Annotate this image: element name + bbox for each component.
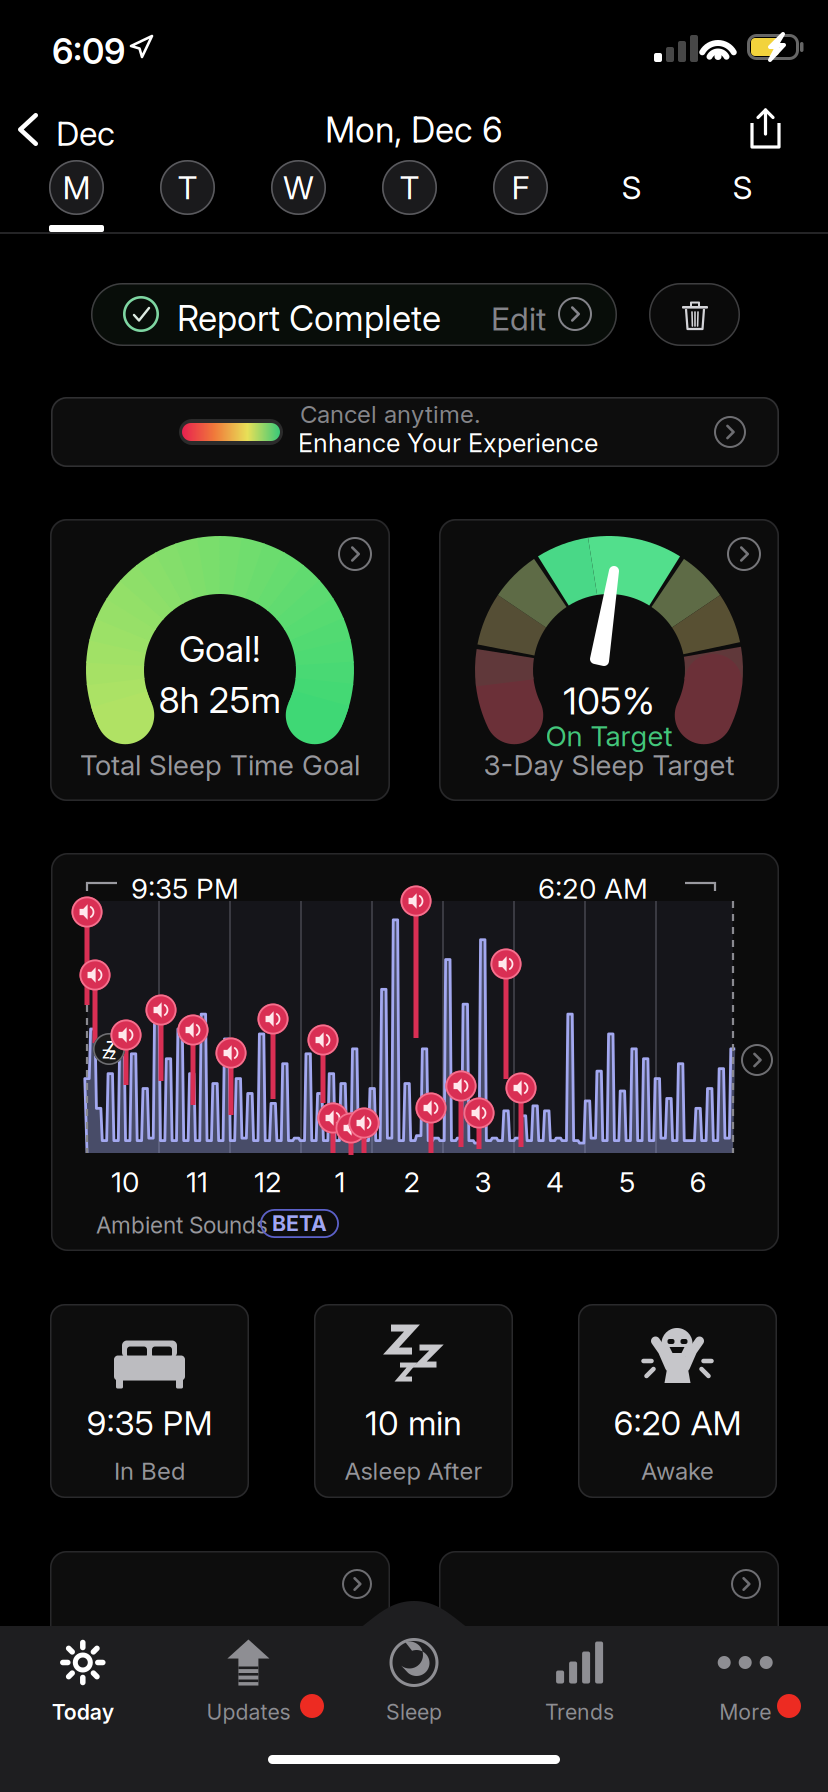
button[interactable]: Goal! — [50, 519, 390, 801]
staticText: Z — [106, 1038, 116, 1055]
staticText: T — [177, 169, 197, 206]
staticText: 6:20 AM — [538, 872, 648, 905]
staticText: On Target — [545, 719, 672, 752]
staticText: 9:35 PM — [131, 872, 239, 905]
staticText: T — [399, 169, 419, 206]
staticText: Cancel anytime. — [300, 400, 481, 428]
staticText: 6 — [689, 1165, 706, 1198]
staticText: Goal! — [179, 628, 261, 670]
button[interactable]: Cancel anytime. — [51, 397, 779, 467]
button[interactable]: S — [576, 160, 687, 232]
staticText: W — [283, 169, 314, 206]
staticText: 9:35 PM — [86, 1403, 212, 1443]
staticText: 8h 25m — [158, 679, 281, 721]
staticText: 1 — [334, 1165, 345, 1198]
staticText: Sleep — [386, 1699, 442, 1725]
button[interactable]: Trends — [497, 1626, 662, 1746]
staticText: 10 min — [365, 1403, 462, 1443]
staticText: Ambient Sounds — [96, 1212, 268, 1239]
button[interactable]: 9:35 PM — [50, 1304, 249, 1498]
staticText: More — [719, 1699, 771, 1725]
staticText: Dec — [56, 114, 115, 153]
staticText: 4 — [546, 1165, 564, 1198]
button[interactable]: F — [465, 160, 576, 232]
staticText: Enhance Your Experience — [298, 428, 598, 458]
staticText: S — [732, 169, 752, 206]
button[interactable]: Sleep — [331, 1626, 497, 1746]
staticText: 5 — [619, 1165, 635, 1198]
staticText: 105% — [563, 679, 655, 723]
staticText: 12 — [254, 1165, 282, 1198]
button[interactable]: More — [662, 1626, 828, 1746]
staticText: F — [511, 169, 529, 206]
staticText: M — [62, 169, 90, 206]
staticText: 11 — [186, 1165, 208, 1198]
button[interactable]: S — [687, 160, 798, 232]
staticText: Awake — [641, 1457, 714, 1485]
staticText: 2 — [403, 1165, 420, 1198]
staticText: Edit — [491, 300, 546, 338]
staticText: 3 — [474, 1165, 491, 1198]
button[interactable]: Updates — [166, 1626, 331, 1746]
button[interactable]: Delete — [649, 283, 740, 346]
button[interactable]: Dec — [0, 0, 130, 64]
staticText: Today — [52, 1699, 114, 1725]
staticText: 6:09 — [52, 31, 125, 72]
button[interactable]: 6:20 AM — [578, 1304, 777, 1498]
staticText: BETA — [272, 1211, 327, 1236]
button[interactable]: M — [21, 160, 132, 232]
staticText: Asleep After — [344, 1457, 482, 1485]
staticText: Z — [109, 1049, 116, 1062]
staticText: S — [621, 169, 641, 206]
button[interactable]: T — [132, 160, 243, 232]
button[interactable]: Today — [0, 1626, 166, 1746]
staticText: 3-Day Sleep Target — [483, 748, 734, 781]
staticText: In Bed — [114, 1457, 185, 1485]
button[interactable]: Report Complete — [91, 283, 617, 346]
staticText: Total Sleep Time Goal — [80, 748, 360, 781]
staticText: Updates — [206, 1699, 290, 1725]
staticText: 10 — [111, 1165, 139, 1198]
staticText: Z — [102, 1047, 110, 1061]
button[interactable]: 105% — [439, 519, 779, 801]
staticText: Mon, Dec 6 — [325, 110, 503, 150]
staticText: Report Complete — [177, 298, 441, 339]
staticText: Trends — [545, 1699, 614, 1725]
button[interactable]: T — [354, 160, 465, 232]
staticText: 6:20 AM — [613, 1403, 741, 1443]
button[interactable]: Share — [727, 98, 805, 160]
button[interactable]: 10 min — [314, 1304, 513, 1498]
button[interactable]: W — [243, 160, 354, 232]
